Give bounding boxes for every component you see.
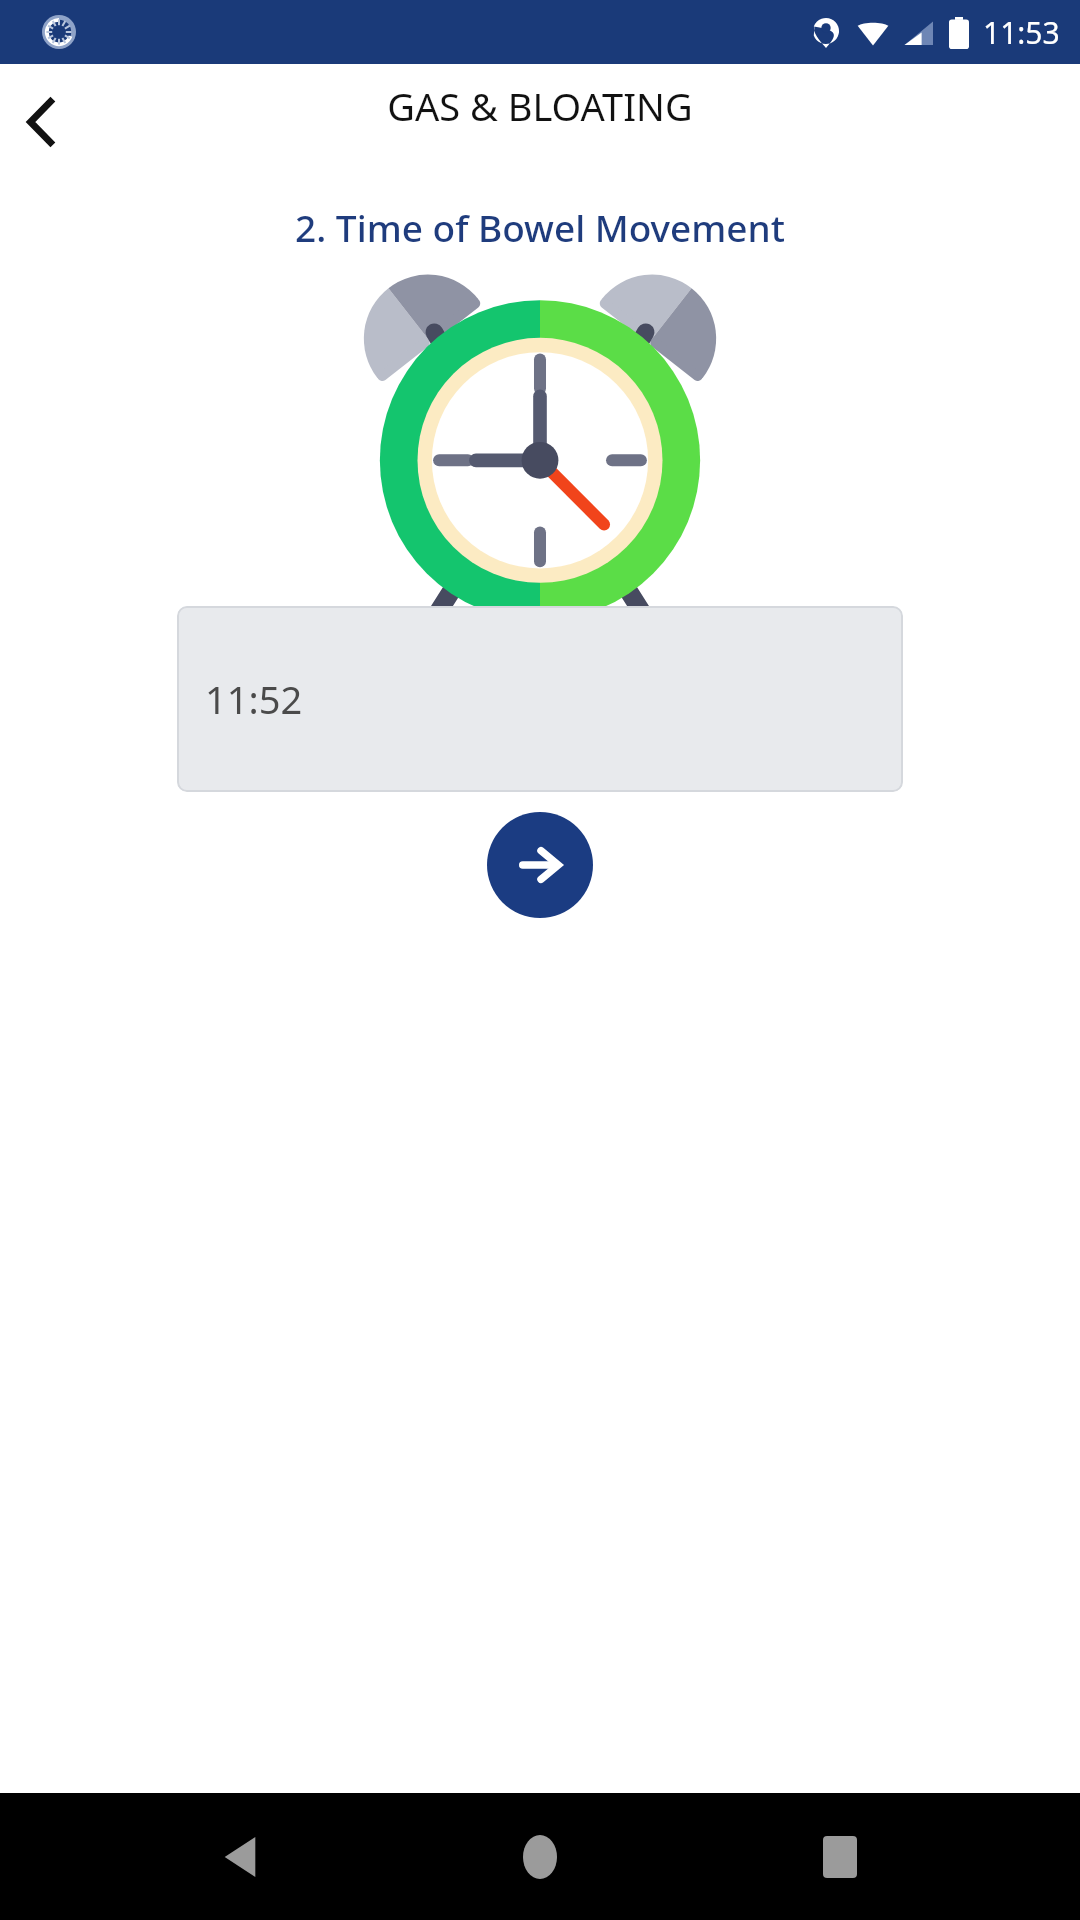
button[interactable]: 11:52 <box>177 606 903 792</box>
staticText: 2. Time of Bowel Movement <box>295 202 785 252</box>
staticText: GAS & BLOATING <box>387 80 693 132</box>
button[interactable]: Back <box>4 84 80 160</box>
button[interactable]: Recents <box>780 1797 900 1917</box>
button[interactable]: Back <box>180 1797 300 1917</box>
staticText: 11:53 <box>983 12 1060 53</box>
button[interactable]: Next <box>487 812 593 918</box>
staticText: 11:52 <box>205 673 303 725</box>
button[interactable]: Home <box>480 1797 600 1917</box>
